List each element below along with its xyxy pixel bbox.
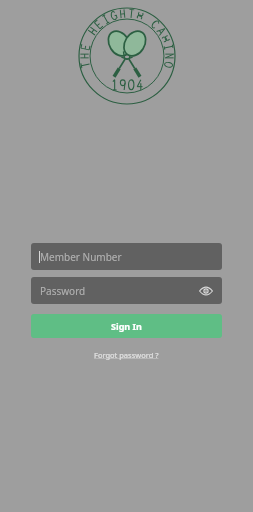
button[interactable]: Password [31, 277, 222, 304]
button[interactable]: Member Number [31, 243, 222, 270]
staticText: Password [40, 284, 86, 298]
staticText: Forgot password ? [94, 350, 159, 360]
button[interactable]: Forgot password ? [90, 348, 163, 362]
button[interactable]: Show password [196, 281, 216, 301]
staticText: Sign In [111, 320, 142, 332]
button[interactable]: Sign In [31, 314, 222, 338]
staticText: Member Number [40, 250, 122, 264]
